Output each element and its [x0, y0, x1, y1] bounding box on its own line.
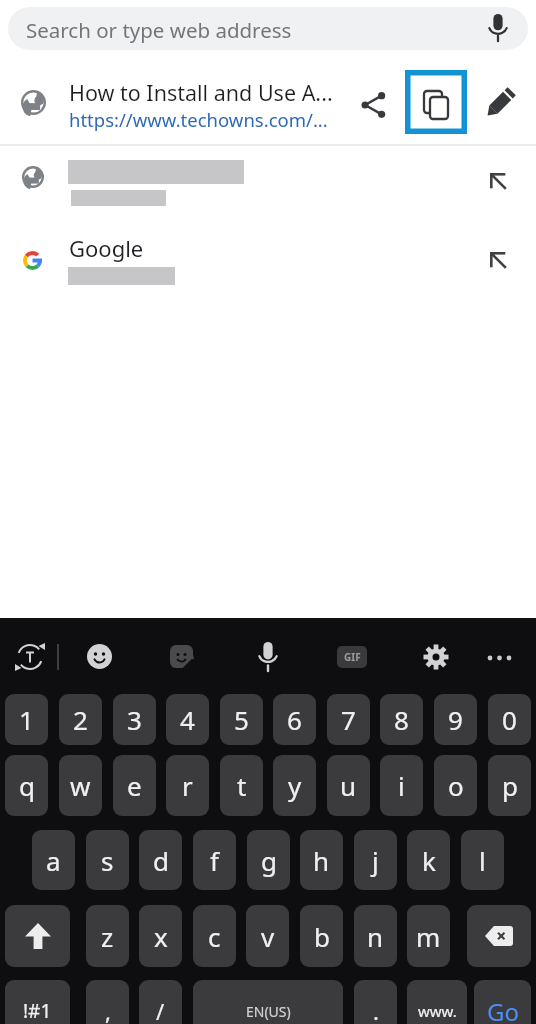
staticText: z: [101, 919, 114, 954]
button[interactable]: a: [32, 830, 75, 890]
staticText: y: [288, 768, 302, 803]
staticText: GIF: [344, 650, 361, 664]
button[interactable]: u: [327, 755, 370, 816]
button[interactable]: How to Install and Use A...: [0, 57, 536, 145]
button[interactable]: c: [193, 905, 236, 967]
button[interactable]: g: [247, 830, 290, 890]
button[interactable]: Google: [0, 225, 536, 300]
button[interactable]: 5: [220, 694, 263, 745]
staticText: n: [367, 919, 384, 954]
button[interactable]: 7: [327, 694, 370, 745]
staticText: https://www.techowns.com/...: [69, 107, 328, 132]
button[interactable]: Search or type web address: [8, 7, 528, 50]
button[interactable]: !#1: [5, 980, 70, 1024]
button[interactable]: [5, 905, 70, 967]
button[interactable]: ,: [86, 980, 129, 1024]
button[interactable]: Go: [474, 980, 531, 1024]
staticText: How to Install and Use A...: [69, 78, 333, 107]
button[interactable]: e: [113, 755, 156, 816]
staticText: o: [448, 768, 464, 803]
button[interactable]: [423, 644, 449, 670]
staticText: h: [313, 843, 330, 878]
staticText: 1: [19, 702, 34, 737]
button[interactable]: [169, 644, 194, 669]
staticText: v: [261, 919, 275, 954]
button[interactable]: r: [166, 755, 209, 816]
staticText: www.: [418, 1001, 457, 1021]
button[interactable]: 2: [59, 694, 102, 745]
button[interactable]: [487, 644, 512, 669]
staticText: g: [261, 843, 277, 878]
staticText: u: [340, 768, 357, 803]
button[interactable]: y: [273, 755, 316, 816]
button[interactable]: o: [434, 755, 477, 816]
staticText: 4: [180, 702, 195, 737]
staticText: Google: [69, 233, 144, 263]
button[interactable]: /: [139, 980, 182, 1024]
button[interactable]: [257, 642, 279, 672]
button[interactable]: [467, 905, 531, 967]
staticText: k: [422, 843, 436, 878]
staticText: x: [154, 919, 168, 954]
staticText: 0: [502, 702, 517, 737]
staticText: r: [182, 768, 193, 803]
button[interactable]: q: [5, 755, 48, 816]
staticText: t: [237, 768, 247, 803]
button[interactable]: 4: [166, 694, 209, 745]
button[interactable]: m: [407, 905, 450, 967]
button[interactable]: 9: [434, 694, 477, 745]
button[interactable]: b: [300, 905, 343, 967]
button[interactable]: 8: [380, 694, 423, 745]
staticText: a: [46, 843, 61, 878]
staticText: 3: [127, 702, 142, 737]
button[interactable]: l: [461, 830, 504, 890]
staticText: b: [314, 919, 330, 954]
button[interactable]: w: [59, 755, 102, 816]
staticText: 7: [341, 702, 356, 737]
staticText: EN(US): [246, 1002, 291, 1021]
button[interactable]: t: [220, 755, 263, 816]
staticText: 2: [73, 702, 88, 737]
button[interactable]: d: [139, 830, 182, 890]
button[interactable]: [0, 146, 536, 225]
staticText: Go: [487, 995, 519, 1024]
button[interactable]: p: [488, 755, 531, 816]
staticText: s: [101, 843, 114, 878]
button[interactable]: [87, 644, 112, 669]
button[interactable]: .: [354, 980, 397, 1024]
staticText: .: [373, 996, 379, 1024]
staticText: 9: [448, 702, 463, 737]
staticText: f: [210, 843, 219, 878]
staticText: Search or type web address: [26, 16, 292, 44]
staticText: m: [416, 919, 441, 954]
staticText: l: [479, 843, 486, 878]
button[interactable]: x: [139, 905, 182, 967]
button[interactable]: 3: [113, 694, 156, 745]
button[interactable]: [355, 87, 391, 123]
staticText: 6: [287, 702, 302, 737]
button[interactable]: s: [86, 830, 129, 890]
button[interactable]: 1: [5, 694, 48, 745]
button[interactable]: 0: [488, 694, 531, 745]
button[interactable]: h: [300, 830, 343, 890]
button[interactable]: i: [380, 755, 423, 816]
staticText: j: [372, 843, 379, 878]
button[interactable]: n: [354, 905, 397, 967]
button[interactable]: z: [86, 905, 129, 967]
button[interactable]: f: [193, 830, 236, 890]
button[interactable]: EN(US): [193, 980, 343, 1024]
button[interactable]: www.: [407, 980, 467, 1024]
button[interactable]: [14, 643, 46, 671]
button[interactable]: v: [246, 905, 289, 967]
staticText: e: [127, 768, 142, 803]
staticText: w: [70, 768, 91, 803]
button[interactable]: k: [407, 830, 450, 890]
button[interactable]: [481, 86, 517, 122]
button[interactable]: j: [354, 830, 397, 890]
staticText: !#1: [23, 998, 52, 1024]
staticText: i: [398, 768, 405, 803]
button[interactable]: GIF: [337, 646, 367, 668]
button[interactable]: 6: [273, 694, 316, 745]
staticText: p: [502, 768, 518, 803]
button[interactable]: [405, 70, 467, 134]
